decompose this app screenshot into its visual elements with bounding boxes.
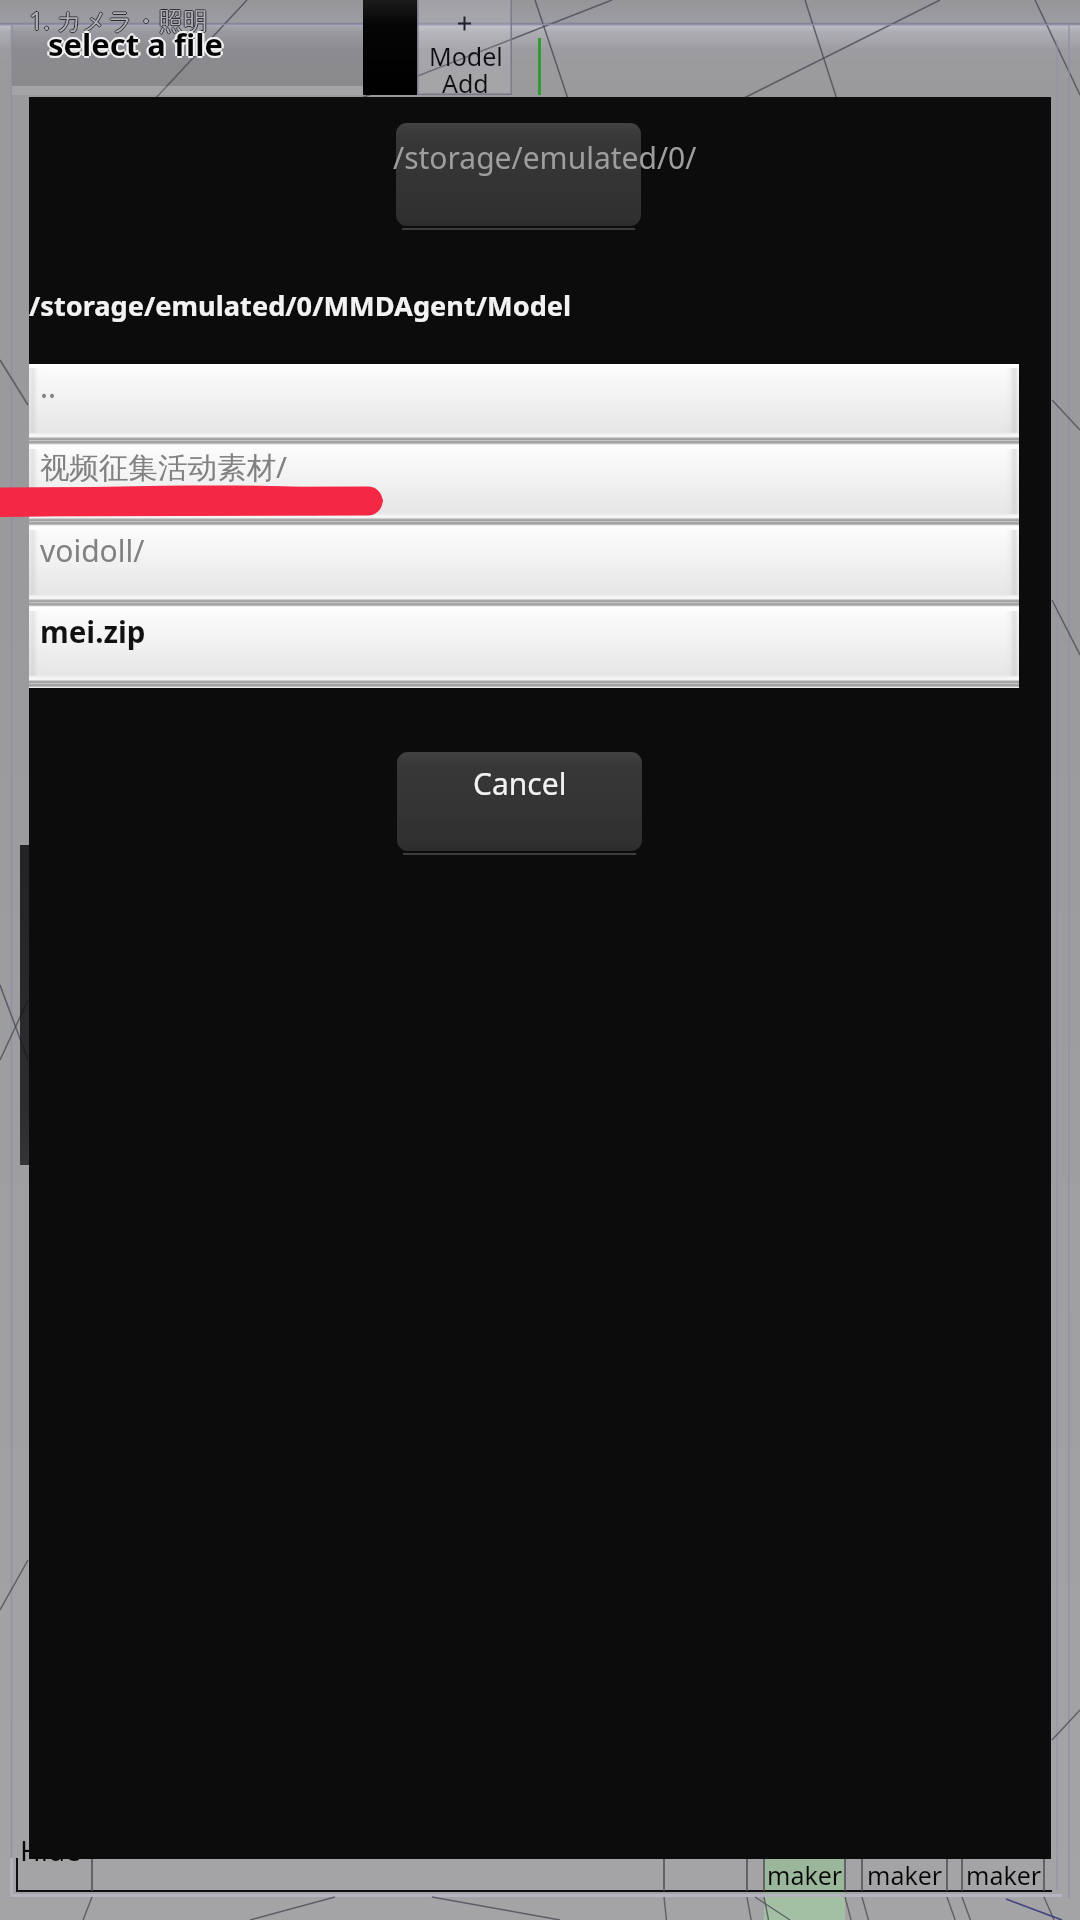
button[interactable]: voidoll/ [29, 526, 1019, 607]
staticText: /storage/emulated/0/MMDAgent/Model [29, 287, 572, 324]
staticText: 1. カメラ・照明 [28, 3, 208, 37]
button[interactable]: maker [862, 1858, 947, 1891]
button[interactable] [396, 123, 641, 226]
button[interactable]: maker [962, 1858, 1044, 1891]
button[interactable]: maker [764, 1858, 845, 1891]
staticText: 1. カメラ・照明 [29, 3, 209, 37]
staticText: maker [867, 1858, 943, 1891]
staticText: 1. カメラ・照明 [29, 2, 209, 36]
staticText: Add [442, 66, 489, 100]
staticText: Hide [20, 1831, 81, 1869]
staticText: .. [40, 366, 57, 407]
staticText: select a file [50, 23, 225, 65]
staticText: maker [767, 1858, 843, 1891]
staticText: voidoll/ [40, 530, 145, 571]
button[interactable]: Cancel [397, 752, 642, 851]
button[interactable]: mei.zip [29, 607, 1019, 688]
staticText: select a file [46, 23, 221, 65]
button[interactable]: Model [417, 0, 512, 95]
staticText: select a file [48, 23, 223, 65]
staticText: select a file [48, 21, 223, 63]
staticText: 1. カメラ・照明 [30, 3, 210, 37]
button[interactable]: 视频征集活动素材/ [29, 445, 1019, 526]
staticText: mei.zip [40, 611, 146, 651]
staticText: Model [429, 39, 503, 73]
staticText: /storage/emulated/0/ [393, 137, 697, 178]
staticText: select a file [48, 25, 223, 67]
staticText: Cancel [473, 763, 567, 804]
staticText: 视频征集活动素材/ [40, 446, 287, 486]
staticText: 1. カメラ・照明 [29, 4, 209, 38]
button[interactable]: Hide [20, 1831, 92, 1891]
staticText: maker [966, 1858, 1042, 1891]
button[interactable]: .. [29, 364, 1019, 445]
button[interactable] [397, 752, 642, 851]
